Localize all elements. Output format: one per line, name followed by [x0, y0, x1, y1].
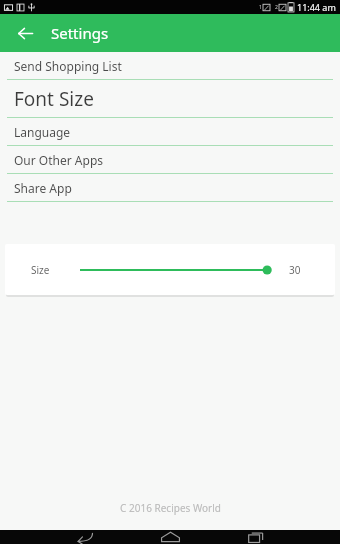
- staticText: Send Shopping List: [14, 58, 122, 74]
- button[interactable]: Recent apps: [213, 530, 299, 544]
- staticText: Share App: [14, 180, 72, 196]
- button[interactable]: Send Shopping List: [0, 52, 340, 79]
- staticText: 1: [259, 4, 262, 11]
- staticText: 11:44 am: [297, 1, 336, 13]
- staticText: 30: [289, 263, 301, 277]
- staticText: 2: [275, 4, 278, 11]
- button[interactable]: Back: [8, 16, 42, 50]
- button[interactable]: Our Other Apps: [0, 146, 340, 173]
- button[interactable]: Size: [5, 244, 335, 295]
- button[interactable]: Language: [0, 118, 340, 145]
- staticText: Font Size: [14, 86, 94, 112]
- staticText: Language: [14, 124, 71, 140]
- button[interactable]: Home: [127, 530, 213, 544]
- button[interactable]: Font Size: [0, 80, 340, 117]
- button[interactable]: Share App: [0, 174, 340, 201]
- button[interactable]: Back: [41, 530, 127, 544]
- staticText: Size: [31, 263, 50, 277]
- staticText: C 2016 Recipes World: [120, 501, 221, 515]
- button[interactable]: Size slider: [80, 257, 270, 283]
- staticText: Our Other Apps: [14, 152, 104, 168]
- staticText: Settings: [51, 23, 109, 43]
